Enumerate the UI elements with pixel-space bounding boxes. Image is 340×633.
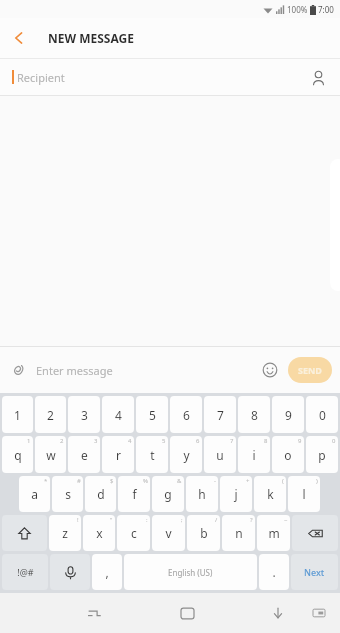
staticText: k [267, 486, 274, 502]
button[interactable]: 5 [136, 436, 168, 473]
button[interactable]: Backspace [292, 515, 338, 551]
staticText: j [234, 486, 238, 502]
staticText: 0 [319, 407, 326, 423]
staticText: ) [316, 477, 318, 485]
staticText: 5 [149, 407, 156, 423]
staticText: b [200, 525, 208, 541]
button[interactable]: 1 [2, 396, 33, 433]
button[interactable]: 5 [136, 396, 168, 433]
button[interactable]: & [152, 476, 184, 512]
button[interactable]: " [83, 515, 115, 551]
staticText: 6 [183, 407, 190, 423]
staticText: 6 [196, 437, 200, 445]
button[interactable]: 2 [35, 436, 66, 473]
button[interactable]: 7 [204, 396, 236, 433]
staticText: 8 [251, 407, 258, 423]
staticText: !@# [17, 566, 34, 578]
staticText: # [77, 477, 81, 485]
button[interactable]: English (US) [124, 554, 257, 590]
button[interactable]: . [259, 554, 289, 590]
button[interactable]: 4 [102, 396, 134, 433]
button[interactable]: # [52, 476, 83, 512]
button[interactable]: Shift [2, 515, 47, 551]
button[interactable]: % [118, 476, 150, 512]
button[interactable]: 9 [272, 396, 304, 433]
staticText: " [110, 516, 113, 524]
button[interactable]: ? [222, 515, 255, 551]
button[interactable]: 7 [204, 436, 236, 473]
staticText: z [62, 525, 68, 541]
button[interactable]: Change keyboard [302, 596, 336, 630]
staticText: 100% [287, 4, 308, 15]
button[interactable]: 1 [2, 436, 33, 473]
button[interactable]: Next [291, 554, 338, 590]
button[interactable]: ( [254, 476, 286, 512]
button[interactable]: ) [288, 476, 320, 512]
staticText: - [214, 477, 216, 485]
button[interactable]: $ [85, 476, 116, 512]
button[interactable]: , [92, 554, 122, 590]
staticText: , [105, 564, 109, 580]
staticText: p [318, 447, 326, 463]
staticText: . [272, 564, 276, 580]
button[interactable]: 3 [68, 396, 100, 433]
staticText: v [165, 525, 172, 541]
staticText: 1 [27, 437, 31, 445]
button[interactable]: Hide keyboard [260, 595, 296, 631]
staticText: t [150, 447, 155, 463]
staticText: NEW MESSAGE [48, 30, 134, 46]
button[interactable]: Recipient [0, 59, 340, 95]
staticText: $ [110, 477, 114, 485]
staticText: 7:00 [318, 4, 334, 15]
staticText: x [96, 525, 103, 541]
button[interactable]: ~ [257, 515, 290, 551]
staticText: q [14, 447, 22, 463]
staticText: 9 [285, 407, 292, 423]
button[interactable]: 6 [170, 396, 202, 433]
button[interactable]: 0 [306, 396, 338, 433]
staticText: 9 [298, 437, 302, 445]
button[interactable]: 6 [170, 436, 202, 473]
staticText: n [235, 525, 243, 541]
button[interactable]: Attach [0, 352, 36, 388]
staticText: + [246, 477, 250, 485]
button[interactable]: + [220, 476, 252, 512]
button[interactable]: 0 [306, 436, 338, 473]
staticText: / [215, 516, 218, 524]
button[interactable]: Add recipient from contacts [300, 59, 336, 95]
staticText: : [146, 516, 148, 524]
button[interactable]: 8 [238, 396, 270, 433]
staticText: d [97, 486, 105, 502]
staticText: 3 [81, 407, 88, 423]
staticText: a [31, 486, 38, 502]
staticText: * [44, 477, 48, 485]
button[interactable]: 2 [35, 396, 66, 433]
button[interactable]: Emoji [252, 352, 288, 388]
button[interactable]: 9 [272, 436, 304, 473]
button[interactable]: Home [167, 593, 207, 633]
button[interactable]: : [117, 515, 150, 551]
button[interactable]: !@# [2, 554, 48, 590]
staticText: r [116, 447, 121, 463]
staticText: f [132, 486, 137, 502]
button[interactable]: Recents [74, 593, 114, 633]
button[interactable]: 8 [238, 436, 270, 473]
button[interactable]: SEND [288, 357, 332, 383]
staticText: % [143, 477, 148, 485]
button[interactable]: ; [152, 515, 185, 551]
button[interactable]: * [19, 476, 50, 512]
staticText: ( [282, 477, 284, 485]
button[interactable]: ! [49, 515, 81, 551]
button[interactable]: Back [0, 19, 38, 57]
staticText: 8 [264, 437, 268, 445]
staticText: l [302, 486, 306, 502]
button[interactable]: 4 [102, 436, 134, 473]
button[interactable]: - [186, 476, 218, 512]
button[interactable]: Voice input [50, 554, 90, 590]
staticText: Next [304, 566, 325, 578]
staticText: English (US) [168, 567, 213, 578]
staticText: 2 [60, 437, 64, 445]
button[interactable]: / [187, 515, 220, 551]
button[interactable]: 3 [68, 436, 100, 473]
staticText: 4 [128, 437, 132, 445]
